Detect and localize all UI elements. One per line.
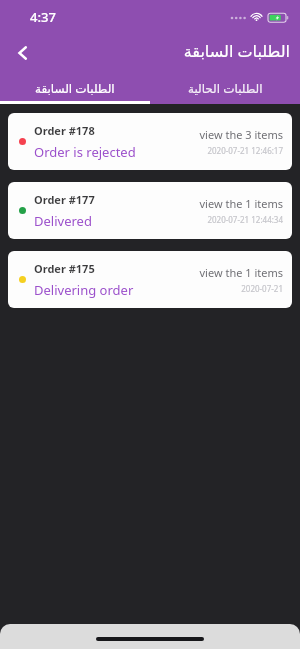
- staticText: 2020-07-21 12:44:34: [207, 214, 283, 225]
- staticText: الطلبات الحالية: [188, 80, 263, 96]
- staticText: Order #178: [34, 123, 95, 138]
- button[interactable]: Back: [6, 36, 40, 70]
- staticText: Order #177: [34, 192, 95, 207]
- staticText: 2020-07-21 12:46:17: [207, 145, 283, 156]
- staticText: Order #175: [34, 261, 95, 276]
- staticText: view the 1 items: [199, 196, 283, 211]
- staticText: الطلبات السابقة: [183, 40, 290, 62]
- button[interactable]: Order #175: [8, 251, 292, 308]
- button[interactable]: الطلبات السابقة: [0, 71, 150, 104]
- staticText: Delivered: [34, 212, 92, 230]
- staticText: Order is rejected: [34, 143, 136, 161]
- button[interactable]: Order #178: [8, 113, 292, 170]
- button[interactable]: الطلبات الحالية: [150, 71, 300, 104]
- button[interactable]: Order #177: [8, 182, 292, 239]
- staticText: 2020-07-21: [241, 283, 283, 294]
- staticText: 4:37: [30, 8, 56, 26]
- staticText: Delivering order: [34, 281, 134, 299]
- staticText: view the 3 items: [199, 127, 283, 142]
- staticText: view the 1 items: [199, 265, 283, 280]
- staticText: الطلبات السابقة: [35, 80, 115, 96]
